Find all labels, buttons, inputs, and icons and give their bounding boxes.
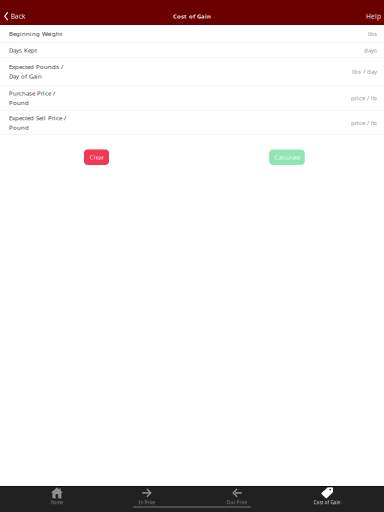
button[interactable]: Purchase Price / (0, 85, 384, 110)
staticText: In Price (138, 499, 155, 506)
button[interactable]: Help (358, 7, 384, 25)
button[interactable]: Out Price (192, 487, 282, 506)
staticText: Help (366, 12, 381, 21)
button[interactable]: Clear (84, 149, 109, 165)
staticText: Cost of Gain (173, 12, 211, 20)
staticText: Expected Pounds / (9, 63, 63, 71)
staticText: Home (50, 499, 63, 506)
button[interactable]: Cost of Gain (282, 487, 372, 506)
staticText: price / lb (351, 119, 377, 127)
staticText: Expected Sell Price / (9, 114, 66, 122)
staticText: Pound (9, 99, 29, 107)
staticText: price / lb (351, 94, 377, 102)
staticText: Calculate (274, 153, 300, 161)
staticText: Purchase Price / (9, 89, 55, 97)
staticText: Out Price (226, 499, 247, 506)
button[interactable]: Days Kept (0, 43, 384, 57)
button[interactable]: Back (0, 7, 33, 25)
staticText: Clear (89, 153, 103, 161)
staticText: Days Kept (9, 46, 37, 54)
button[interactable]: Expected Sell Price / (0, 111, 384, 134)
button[interactable]: Home (12, 487, 102, 506)
button[interactable]: Expected Pounds / (0, 58, 384, 85)
staticText: lbs (368, 30, 377, 38)
button[interactable]: In Price (102, 487, 192, 506)
staticText: lbs / day (352, 67, 377, 76)
staticText: Cost of Gain (313, 499, 340, 506)
staticText: days (364, 46, 377, 54)
staticText: Day of Gain (9, 72, 42, 80)
button[interactable]: Calculate (269, 149, 305, 165)
staticText: Beginning Weight (9, 30, 62, 38)
staticText: Pound (9, 123, 29, 132)
staticText: Back (11, 12, 26, 21)
button[interactable]: Beginning Weight (0, 25, 384, 42)
